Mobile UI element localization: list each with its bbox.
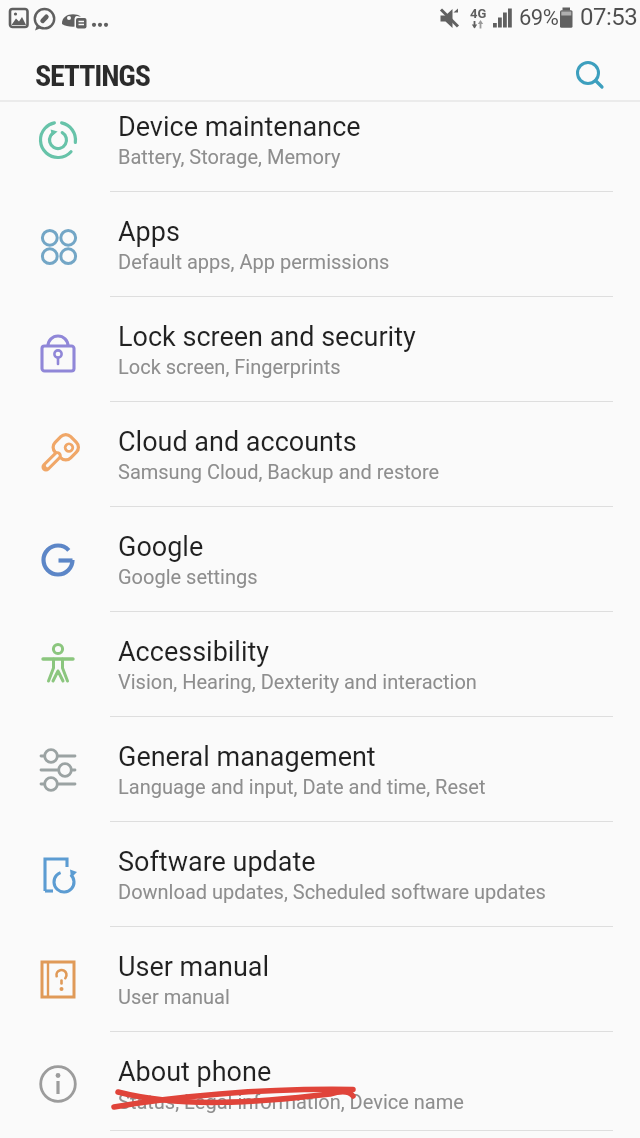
button[interactable]: Lock screen and security — [0, 297, 640, 402]
button[interactable]: Software update — [0, 822, 640, 927]
button[interactable]: Cloud and accounts — [0, 402, 640, 507]
button[interactable]: Apps — [0, 192, 640, 297]
button[interactable]: Device maintenance — [0, 87, 640, 192]
staticText: Apps — [118, 216, 180, 248]
button[interactable]: About phone — [0, 1032, 640, 1137]
staticText: Device maintenance — [118, 111, 361, 143]
staticText: 4G — [470, 6, 487, 21]
staticText: SETTINGS — [35, 58, 150, 93]
staticText: Cloud and accounts — [118, 426, 357, 458]
staticText: Language and input, Date and time, Reset — [118, 775, 486, 798]
staticText: Google settings — [118, 565, 258, 588]
button[interactable]: Google — [0, 507, 640, 612]
staticText: Status, Legal information, Device name — [118, 1090, 464, 1113]
staticText: 07:53 — [580, 3, 638, 31]
staticText: Vision, Hearing, Dexterity and interacti… — [118, 670, 477, 693]
staticText: General management — [118, 741, 376, 773]
button[interactable]: Accessibility — [0, 612, 640, 717]
staticText: About phone — [118, 1056, 272, 1088]
staticText: Lock screen and security — [118, 321, 416, 353]
staticText: Accessibility — [118, 636, 270, 668]
staticText: Battery, Storage, Memory — [118, 145, 341, 168]
staticText: Default apps, App permissions — [118, 250, 390, 273]
staticText: Lock screen, Fingerprints — [118, 355, 341, 378]
staticText: User manual — [118, 951, 270, 983]
staticText: Samsung Cloud, Backup and restore — [118, 460, 440, 483]
button[interactable]: User manual — [0, 927, 640, 1032]
staticText: User manual — [118, 985, 230, 1008]
staticText: Download updates, Scheduled software upd… — [118, 880, 546, 903]
staticText: 69% — [519, 5, 559, 31]
button[interactable]: General management — [0, 717, 640, 822]
staticText: Google — [118, 531, 204, 563]
button[interactable] — [566, 54, 610, 98]
staticText: Software update — [118, 846, 316, 878]
